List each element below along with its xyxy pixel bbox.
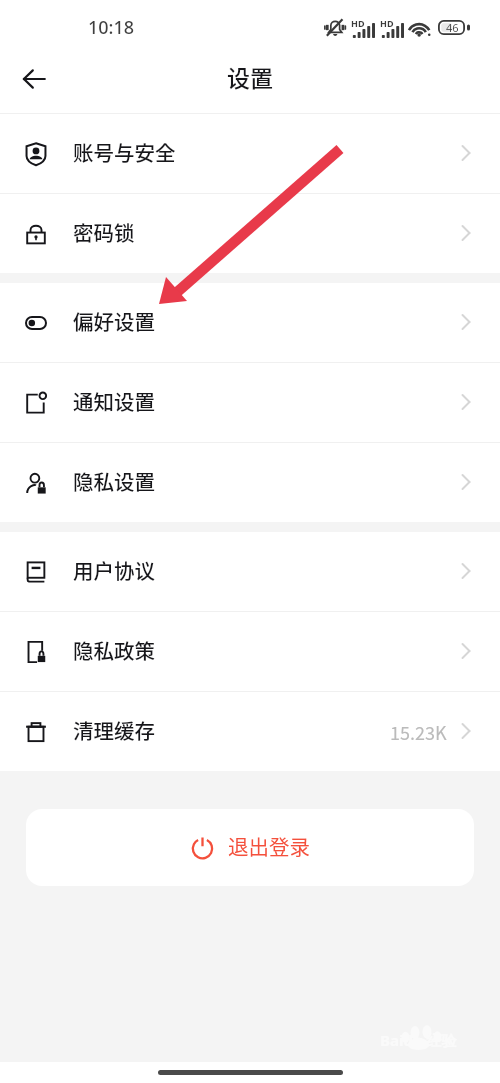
button[interactable]: 偏好设置 [0,283,500,362]
staticText: 通知设置 [73,386,155,416]
button[interactable]: 退出登录 [26,809,474,886]
button[interactable]: 隐私政策 [0,612,500,691]
button[interactable]: 密码锁 [0,194,500,273]
button[interactable]: Back [12,57,56,101]
staticText: 10:18 [88,15,135,40]
staticText: 15.23K [390,719,447,745]
staticText: 隐私设置 [73,466,155,496]
staticText: HD [351,17,365,29]
button[interactable]: 清理缓存 [0,692,500,771]
staticText: 偏好设置 [73,306,155,336]
button[interactable]: 账号与安全 [0,114,500,193]
staticText: 46 [446,20,459,35]
staticText: 账号与安全 [73,137,176,167]
staticText: 用户协议 [73,555,155,585]
staticText: 设置 [227,60,273,93]
staticText: 清理缓存 [73,715,155,745]
staticText: 隐私政策 [73,635,155,665]
button[interactable]: 用户协议 [0,532,500,611]
staticText: HD [380,17,394,29]
staticText: 退出登录 [228,831,310,861]
staticText: 密码锁 [73,217,135,247]
button[interactable]: 通知设置 [0,363,500,442]
button[interactable]: 隐私设置 [0,443,500,522]
